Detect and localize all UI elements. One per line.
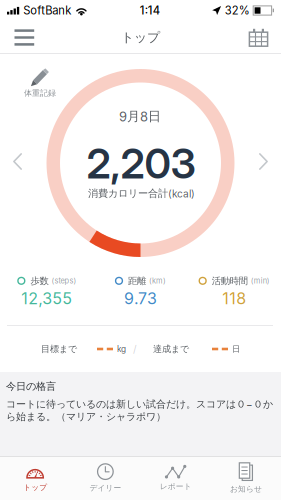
staticText: (min)	[251, 276, 270, 285]
staticText: (steps)	[51, 276, 76, 285]
staticText: 32%	[225, 4, 250, 17]
staticText: トップ	[121, 29, 160, 46]
staticText: kg	[117, 344, 126, 354]
staticText: /	[133, 343, 137, 355]
button[interactable]: レポート	[140, 456, 211, 500]
staticText: 2,203	[86, 138, 195, 188]
button[interactable]: Calendar	[236, 22, 281, 53]
staticText: SoftBank	[23, 4, 71, 17]
staticText: デイリー	[89, 483, 121, 493]
staticText: レポート	[160, 482, 192, 491]
staticText: 活動時間	[212, 275, 248, 287]
button[interactable]: Next day	[251, 145, 276, 178]
staticText: 距離	[128, 275, 146, 287]
staticText: 118	[222, 289, 246, 308]
button[interactable]: Previous day	[5, 145, 30, 178]
staticText: お知らせ	[230, 484, 262, 494]
button[interactable]: Menu	[0, 22, 46, 53]
staticText: (km)	[149, 276, 166, 285]
staticText: 体重記録	[24, 88, 56, 98]
staticText: 日	[232, 344, 240, 354]
staticText: 今日の格言	[6, 380, 56, 393]
button[interactable]: トップ	[0, 456, 70, 500]
staticText: コートに待っているのは新しい試合だけ。スコアは０−０から始まる。（マリア・シャラ…	[6, 398, 273, 423]
staticText: 12,355	[21, 289, 72, 308]
button[interactable]: 体重記録	[20, 68, 60, 98]
staticText: 達成まで	[153, 343, 189, 355]
staticText: トップ	[23, 483, 47, 492]
staticText: 歩数	[30, 275, 48, 287]
staticText: 9.73	[124, 289, 157, 308]
staticText: 9月8日	[119, 108, 161, 125]
staticText: 消費カロリー合計(kcal)	[88, 187, 195, 200]
staticText: 1:14	[140, 4, 160, 17]
staticText: 目標まで	[41, 343, 77, 355]
button[interactable]: お知らせ	[211, 456, 281, 500]
button[interactable]: デイリー	[70, 456, 140, 500]
